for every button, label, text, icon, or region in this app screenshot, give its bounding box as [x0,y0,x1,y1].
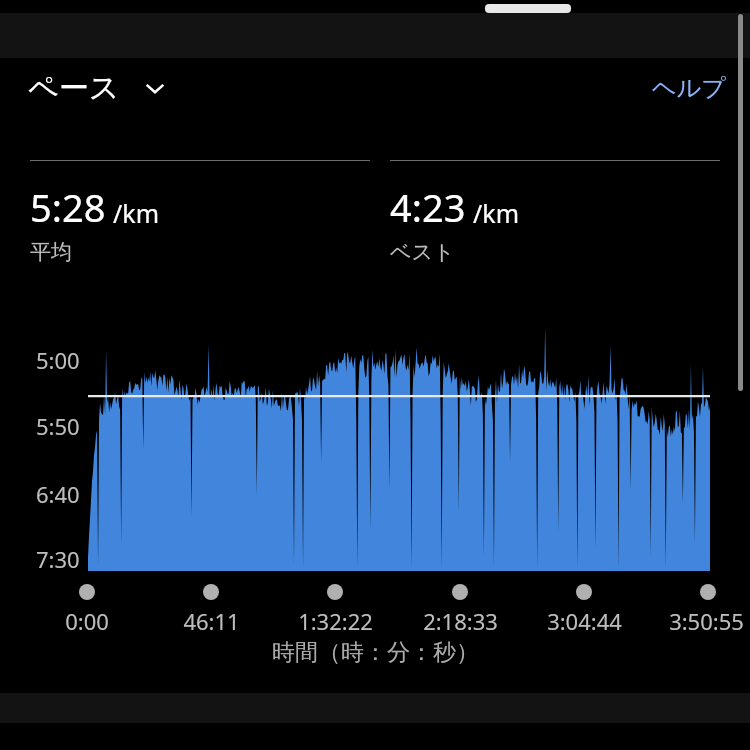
staticText: 時間（時：分：秒） [272,638,479,667]
staticText: 7:30 [36,544,80,574]
staticText: 5:28 [30,181,106,233]
staticText: 1:32:22 [298,606,373,636]
staticText: 0:00 [65,606,109,636]
staticText: 2:18:33 [423,606,498,636]
staticText: ペース [28,69,120,107]
staticText: 3:50:55 [669,606,744,636]
button[interactable]: ペース [28,69,168,107]
staticText: /km [113,196,160,230]
staticText: ヘルプ [652,73,726,103]
staticText: /km [473,196,520,230]
button[interactable]: ヘルプ [652,73,726,103]
staticText: 5:50 [36,411,80,441]
staticText: 5:00 [36,345,80,375]
staticText: 6:40 [36,479,80,509]
staticText: ベスト [390,239,455,265]
button[interactable]: Pace chart [88,300,710,571]
staticText: 46:11 [183,606,240,636]
staticText: 4:23 [390,181,466,233]
staticText: 平均 [30,239,72,265]
staticText: 3:04:44 [547,606,622,636]
